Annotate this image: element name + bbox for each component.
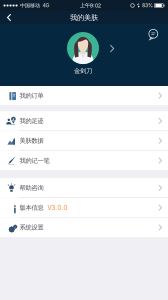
- staticText: 金剑刀: [74, 67, 92, 75]
- button[interactable]: 版本信息: [0, 198, 168, 217]
- staticText: 我的美肤: [70, 13, 98, 22]
- staticText: 83%: [142, 2, 153, 8]
- button[interactable]: 金剑刀: [24, 30, 144, 80]
- button[interactable]: 我的记一笔: [0, 151, 168, 170]
- button[interactable]: 帮助咨询: [0, 178, 168, 197]
- staticText: V3.0.0: [47, 204, 67, 211]
- staticText: 系统设置: [19, 223, 43, 231]
- staticText: 上午9:02: [80, 2, 101, 9]
- staticText: 帮助咨询: [19, 184, 43, 192]
- button[interactable]: 美肤数据: [0, 131, 168, 150]
- staticText: 我的足迹: [19, 117, 43, 125]
- staticText: 4G: [43, 2, 50, 8]
- staticText: 中国移动: [20, 2, 40, 9]
- button[interactable]: Back: [0, 11, 19, 24]
- button[interactable]: Messages: [145, 26, 162, 43]
- staticText: 版本信息: [19, 204, 43, 212]
- staticText: 我的记一笔: [19, 157, 49, 164]
- button[interactable]: 我的足迹: [0, 111, 168, 131]
- staticText: 美肤数据: [19, 137, 43, 145]
- button[interactable]: 我的订单: [0, 86, 168, 105]
- button[interactable]: 系统设置: [0, 218, 168, 237]
- staticText: 我的订单: [19, 92, 43, 100]
